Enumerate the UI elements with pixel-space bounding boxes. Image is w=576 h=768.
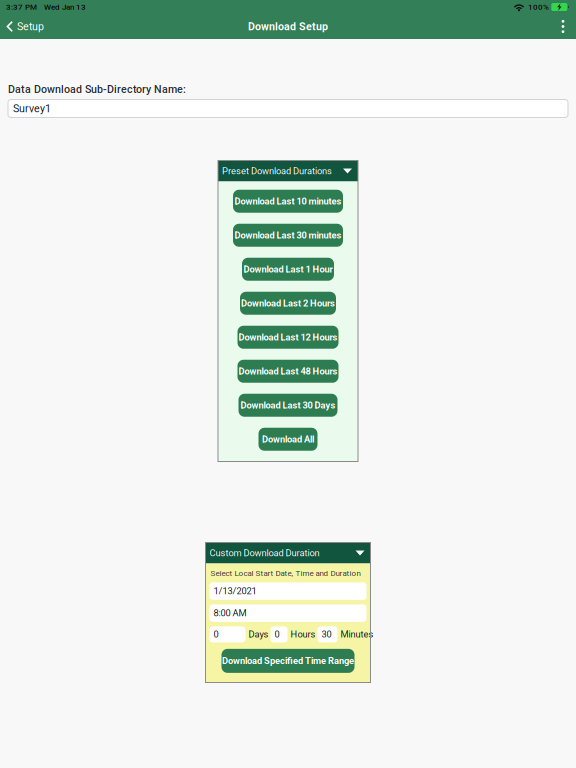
button[interactable]: Download Last 2 Hours	[240, 292, 336, 315]
button[interactable]: Download Last 30 Days	[238, 394, 337, 417]
staticText: Select Local Start Date, Time and Durati…	[210, 568, 360, 578]
staticText: Download Last 2 Hours	[241, 298, 335, 309]
staticText: 1/13/2021	[213, 586, 256, 597]
staticText: Download Last 30 Days	[240, 400, 335, 411]
staticText: Preset Download Durations	[222, 165, 332, 176]
button[interactable]: Custom Download Duration	[205, 542, 370, 563]
staticText: Setup	[17, 20, 44, 33]
staticText: Download Setup	[248, 20, 328, 33]
staticText: Download Last 48 Hours	[238, 366, 337, 377]
staticText: Custom Download Duration	[209, 547, 319, 558]
button[interactable]: Download All	[258, 428, 317, 451]
staticText: Days	[248, 629, 268, 640]
button[interactable]: Download Specified Time Range	[221, 649, 354, 673]
staticText: 100%	[528, 2, 549, 12]
staticText: Download All	[262, 434, 314, 445]
staticText: 3:37 PM	[6, 2, 37, 12]
button[interactable]: Download Last 12 Hours	[237, 326, 338, 349]
button[interactable]: Preset Download Durations	[218, 160, 358, 181]
staticText: Wed Jan 13	[44, 2, 86, 12]
button[interactable]: Download Last 48 Hours	[237, 360, 338, 383]
staticText: 8:00 AM	[213, 608, 246, 619]
staticText: Download Last 10 minutes	[234, 196, 341, 207]
staticText: Data Download Sub-Directory Name:	[8, 83, 186, 95]
staticText: Survey1	[13, 102, 51, 115]
staticText: Download Last 30 minutes	[234, 230, 341, 241]
staticText: 30	[321, 629, 331, 640]
staticText: 0	[213, 629, 218, 640]
staticText: Download Specified Time Range	[222, 655, 354, 666]
staticText: 0	[274, 629, 279, 640]
staticText: Download Last 12 Hours	[238, 332, 337, 343]
staticText: Hours	[290, 629, 315, 640]
staticText: Minutes	[340, 629, 373, 640]
button[interactable]: Download Last 1 Hour	[242, 258, 334, 281]
button[interactable]: Download Last 10 minutes	[233, 190, 343, 213]
button[interactable]: More options	[550, 14, 576, 39]
button[interactable]: Setup	[0, 14, 50, 39]
staticText: Download Last 1 Hour	[243, 264, 332, 275]
button[interactable]: Download Last 30 minutes	[233, 224, 343, 247]
